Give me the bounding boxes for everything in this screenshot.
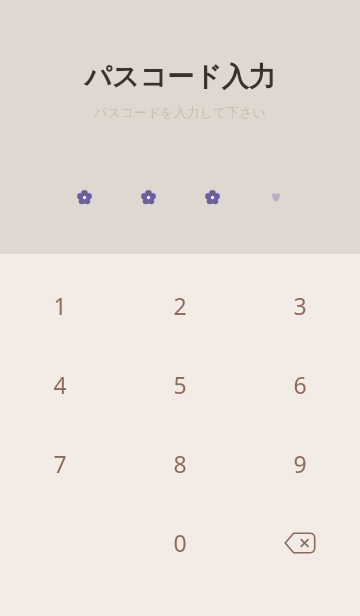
staticText: 9 bbox=[293, 448, 307, 479]
button[interactable]: Delete bbox=[240, 503, 360, 582]
button[interactable]: 3 bbox=[240, 266, 360, 345]
staticText: 2 bbox=[173, 290, 187, 321]
staticText: 6 bbox=[293, 369, 307, 400]
button[interactable]: 8 bbox=[120, 424, 240, 503]
button[interactable]: 5 bbox=[120, 345, 240, 424]
button[interactable]: 0 bbox=[120, 503, 240, 582]
button[interactable]: 2 bbox=[120, 266, 240, 345]
staticText: 0 bbox=[173, 527, 187, 558]
staticText: 1 bbox=[53, 290, 67, 321]
button[interactable]: 4 bbox=[0, 345, 120, 424]
staticText: 5 bbox=[173, 369, 187, 400]
staticText: 7 bbox=[53, 448, 67, 479]
button[interactable]: 1 bbox=[0, 266, 120, 345]
staticText: パスコードを入力して下さい bbox=[94, 104, 266, 120]
button[interactable]: 6 bbox=[240, 345, 360, 424]
button[interactable]: 7 bbox=[0, 424, 120, 503]
staticText: 8 bbox=[173, 448, 187, 479]
staticText: パスコード入力 bbox=[84, 60, 276, 94]
button[interactable]: 9 bbox=[240, 424, 360, 503]
staticText: 3 bbox=[293, 290, 307, 321]
staticText: 4 bbox=[53, 369, 67, 400]
